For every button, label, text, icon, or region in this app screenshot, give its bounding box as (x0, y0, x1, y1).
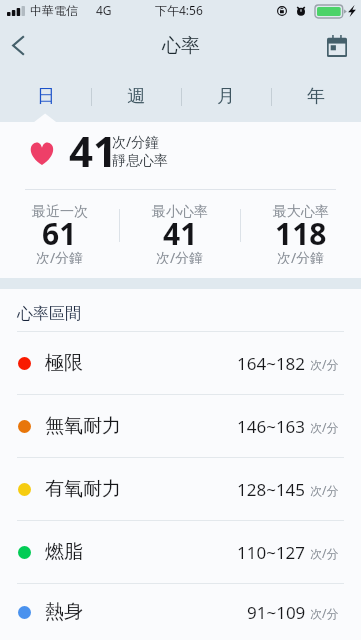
staticText: 熱身 (45, 600, 83, 624)
staticText: 最近一次 (32, 203, 88, 221)
staticText: 次/分 (310, 545, 339, 561)
button[interactable]: 燃脂 (0, 521, 361, 583)
button[interactable]: 極限 (0, 332, 361, 394)
staticText: 下午4:56 (155, 2, 203, 18)
staticText: 心率區間 (17, 304, 81, 324)
staticText: 有氧耐力 (45, 477, 121, 501)
staticText: 次/分鐘 (277, 248, 325, 264)
staticText: 最小心率 (152, 203, 208, 221)
staticText: 61 (42, 213, 77, 254)
staticText: 年 (307, 85, 325, 108)
staticText: 164~182 (237, 352, 306, 375)
button[interactable]: Back (0, 22, 36, 68)
staticText: 4G (96, 2, 112, 18)
staticText: 次/分 (310, 482, 339, 498)
staticText: 41 (69, 122, 118, 179)
button[interactable]: 週 (91, 68, 181, 112)
staticText: 無氧耐力 (45, 414, 121, 438)
staticText: 日 (37, 85, 55, 108)
staticText: 燃脂 (45, 540, 83, 564)
staticText: 次/分鐘 (156, 248, 204, 264)
button[interactable]: Calendar (313, 22, 361, 68)
staticText: 極限 (45, 351, 83, 375)
staticText: 128~145 (237, 478, 306, 501)
button[interactable]: 有氧耐力 (0, 458, 361, 520)
button[interactable]: 日 (0, 68, 91, 112)
staticText: 110~127 (237, 541, 306, 564)
staticText: 41 (163, 213, 198, 254)
staticText: 次/分鐘 (112, 132, 160, 151)
staticText: 月 (217, 85, 235, 108)
staticText: 次/分鐘 (36, 248, 84, 264)
staticText: 靜息心率 (112, 152, 168, 170)
staticText: 中華電信 (30, 3, 78, 18)
staticText: 118 (275, 213, 327, 254)
button[interactable]: 年 (271, 68, 361, 112)
button[interactable]: 無氧耐力 (0, 395, 361, 457)
staticText: 次/分 (310, 356, 339, 372)
button[interactable]: 月 (181, 68, 271, 112)
staticText: 週 (127, 85, 145, 108)
staticText: 最大心率 (273, 203, 329, 221)
button[interactable]: 熱身 (0, 584, 361, 640)
staticText: 心率 (162, 34, 200, 58)
staticText: 91~109 (247, 601, 306, 624)
staticText: 次/分 (310, 419, 339, 435)
staticText: 次/分 (310, 605, 339, 621)
staticText: 146~163 (237, 415, 306, 438)
